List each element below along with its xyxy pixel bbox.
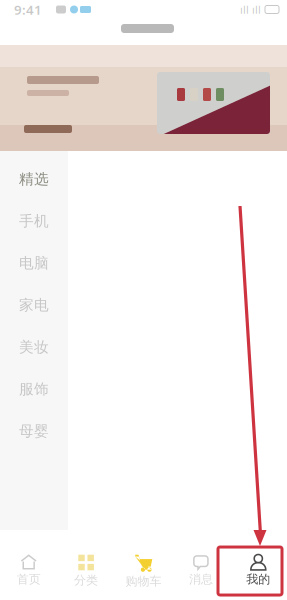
- staticText: 9:41: [14, 1, 42, 18]
- button[interactable]: 电脑: [0, 242, 68, 284]
- button[interactable]: 我的: [230, 530, 287, 600]
- button[interactable]: [0, 45, 287, 151]
- button[interactable]: 精选: [0, 158, 68, 200]
- button[interactable]: 家电: [0, 284, 68, 326]
- staticText: 精选: [19, 170, 49, 188]
- button[interactable]: 消息: [172, 530, 230, 600]
- staticText: 家电: [19, 296, 49, 314]
- button[interactable]: 母婴: [0, 410, 68, 452]
- staticText: 母婴: [19, 422, 49, 440]
- staticText: 我的: [246, 572, 270, 587]
- staticText: 美妆: [19, 338, 49, 356]
- button[interactable]: 美妆: [0, 326, 68, 368]
- button[interactable]: 服饰: [0, 368, 68, 410]
- staticText: 消息: [189, 572, 213, 587]
- staticText: ıll: [240, 2, 249, 17]
- staticText: 首页: [17, 572, 41, 587]
- button[interactable]: 手机: [0, 200, 68, 242]
- button[interactable]: 首页: [0, 530, 57, 600]
- staticText: 服饰: [19, 380, 49, 398]
- button[interactable]: [0, 19, 287, 45]
- button[interactable]: 分类: [57, 530, 115, 600]
- button[interactable]: 购物车: [115, 530, 172, 600]
- staticText: 购物车: [125, 574, 161, 589]
- staticText: ıll: [252, 2, 261, 17]
- staticText: 分类: [74, 573, 98, 588]
- staticText: 电脑: [19, 254, 49, 272]
- staticText: 手机: [19, 212, 49, 230]
